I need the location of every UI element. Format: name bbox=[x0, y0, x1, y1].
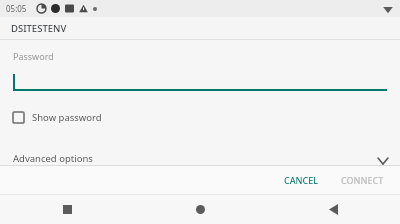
button[interactable]: Password bbox=[0, 50, 400, 91]
staticText: CONNECT bbox=[341, 174, 384, 186]
staticText: CANCEL bbox=[284, 174, 319, 186]
staticText: DSITESTENV bbox=[11, 22, 67, 35]
staticText: 05:05 bbox=[6, 3, 27, 14]
button[interactable]: Recent apps bbox=[0, 194, 134, 224]
button[interactable]: CANCEL bbox=[275, 169, 328, 191]
button[interactable]: Home bbox=[134, 194, 267, 224]
button[interactable]: Back bbox=[267, 194, 400, 224]
staticText: Show password bbox=[32, 111, 102, 124]
button[interactable]: Show password bbox=[0, 107, 400, 128]
staticText: Advanced options bbox=[13, 152, 93, 165]
staticText: Password bbox=[13, 50, 54, 62]
button[interactable]: Advanced options bbox=[0, 151, 400, 165]
button[interactable]: CONNECT bbox=[332, 169, 393, 191]
other: Expand advanced options bbox=[378, 158, 388, 164]
